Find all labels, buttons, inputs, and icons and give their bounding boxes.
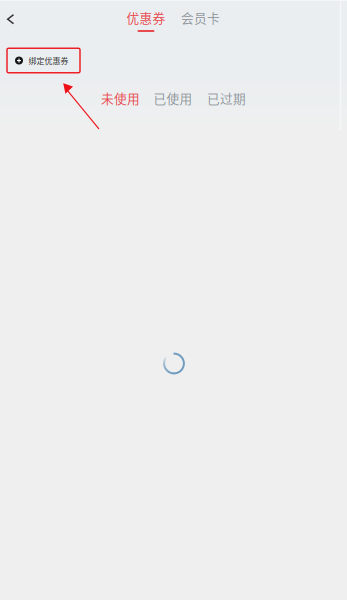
staticText: 未使用 [101,89,140,107]
button[interactable]: 会员卡 [177,10,223,33]
button[interactable]: 已使用 [152,89,194,106]
button[interactable]: Back [0,5,26,33]
button[interactable]: 未使用 [99,89,141,106]
button[interactable]: 绑定优惠券 [7,48,80,73]
staticText: 优惠券 [126,8,165,27]
staticText: 已使用 [153,89,192,107]
staticText: 绑定优惠券 [28,55,68,66]
staticText: 已过期 [207,89,246,107]
button[interactable]: 已过期 [205,89,247,106]
staticText: 会员卡 [181,8,220,27]
button[interactable]: 优惠券 [123,10,169,33]
